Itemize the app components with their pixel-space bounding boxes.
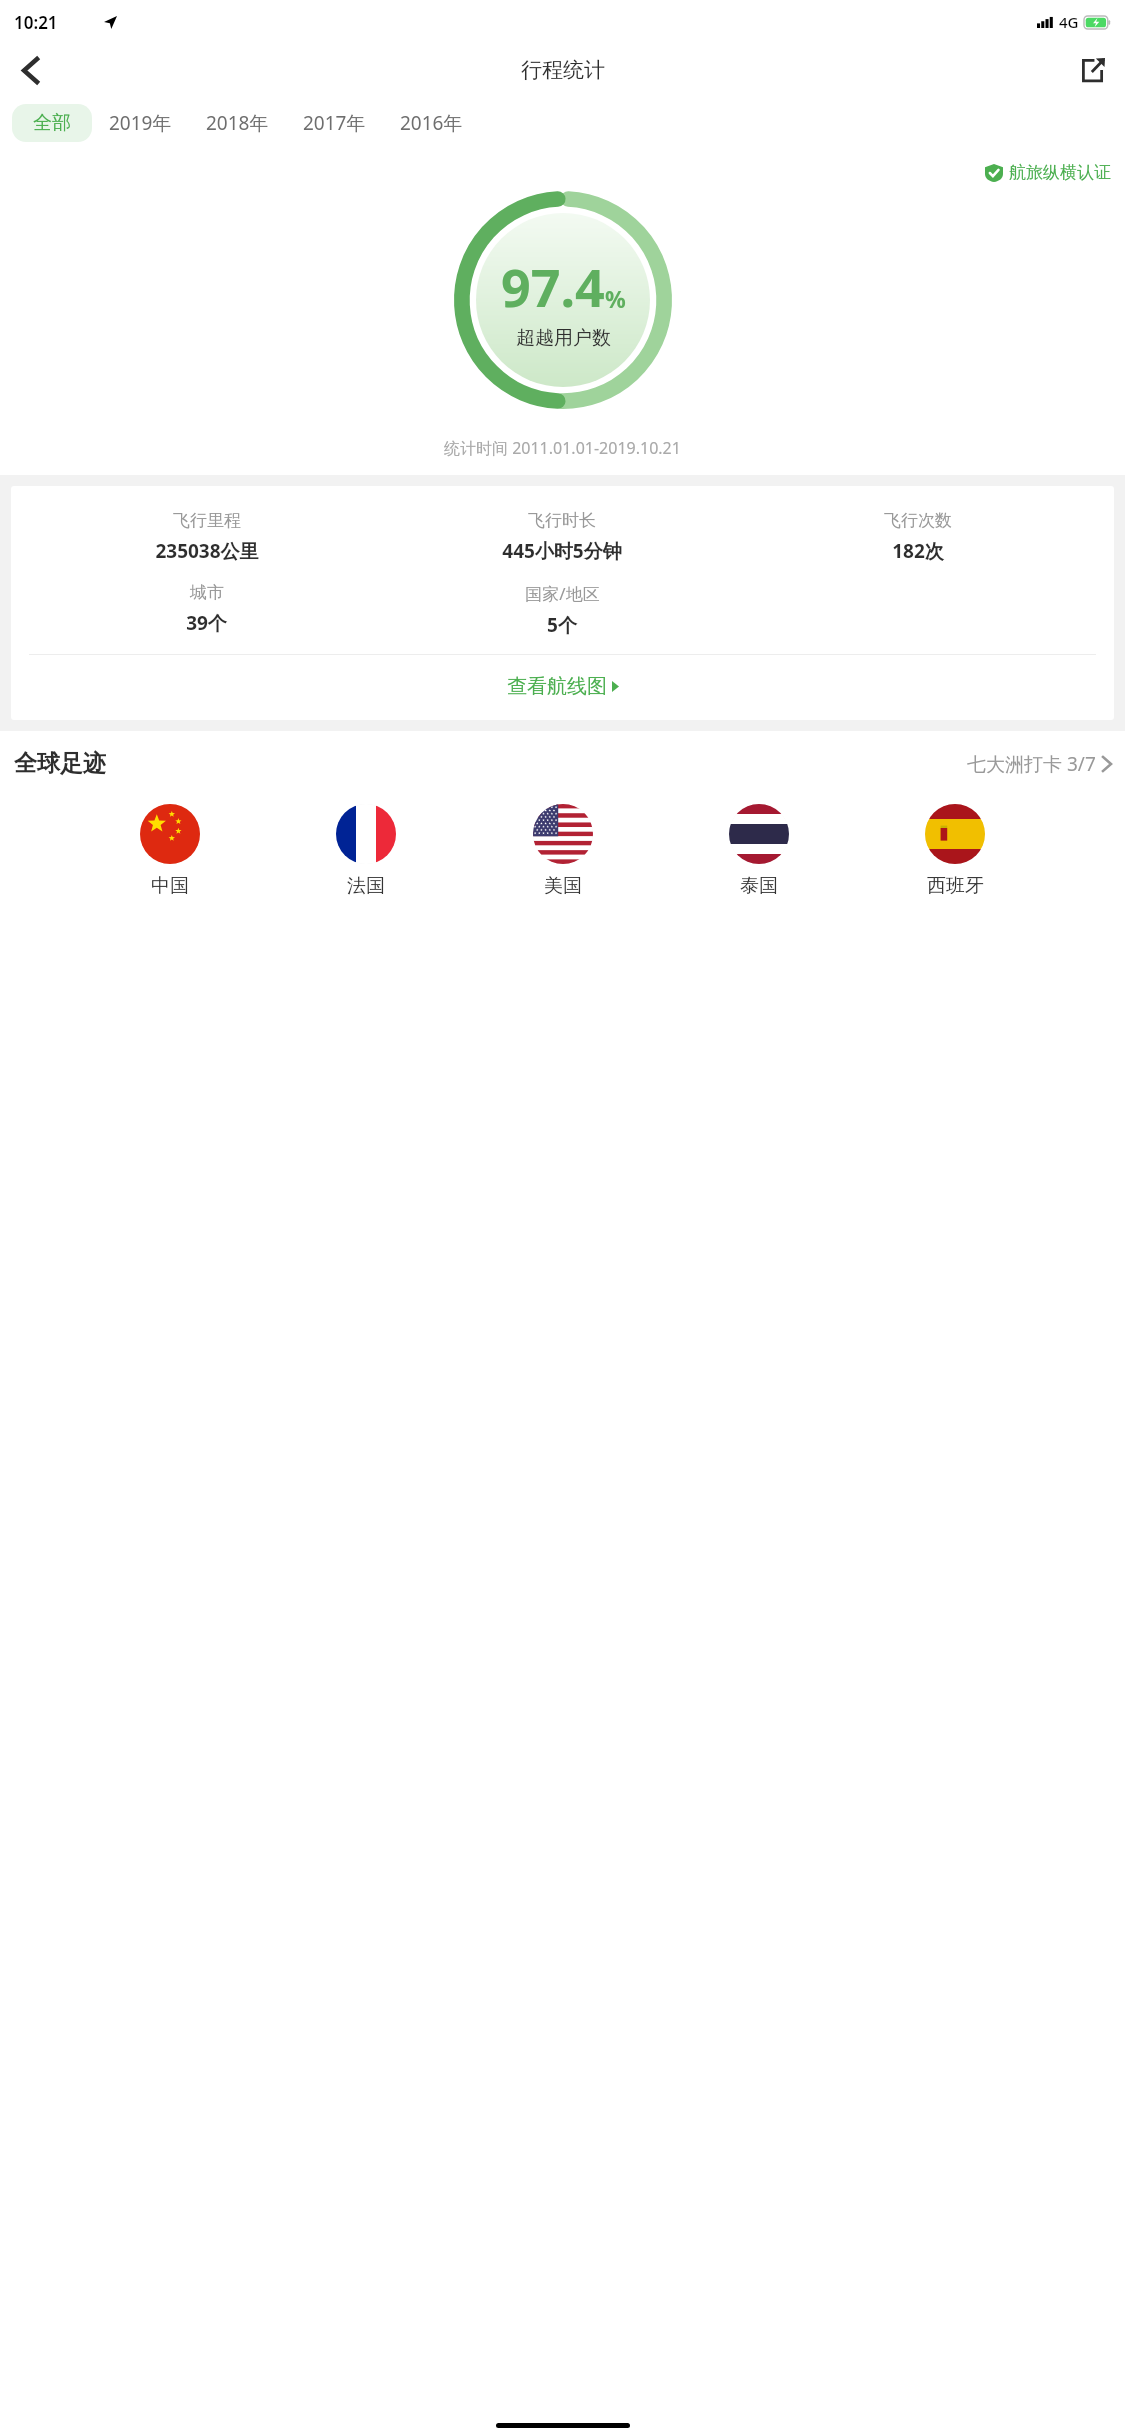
button[interactable]: Back	[6, 46, 54, 94]
staticText: 全球足迹	[14, 749, 106, 778]
button[interactable]: 法国	[332, 804, 400, 898]
staticText: 235038公里	[155, 538, 259, 564]
staticText: 查看航线图	[507, 674, 607, 699]
staticText: 航旅纵横认证	[1009, 162, 1111, 183]
button[interactable]: 七大洲打卡 3/7	[967, 751, 1111, 777]
button[interactable]: 2017年	[286, 103, 383, 143]
staticText: 2018年	[206, 110, 269, 136]
staticText: 182次	[892, 538, 944, 564]
staticText: 七大洲打卡 3/7	[967, 751, 1096, 777]
staticText: 2016年	[400, 110, 463, 136]
staticText: 飞行里程	[173, 510, 241, 531]
staticText: %	[605, 283, 626, 314]
staticText: 法国	[347, 874, 385, 898]
button[interactable]: 2016年	[383, 103, 480, 143]
staticText: 2019年	[109, 110, 172, 136]
staticText: 全部	[33, 111, 71, 135]
button[interactable]: 查看航线图	[29, 655, 1096, 718]
button[interactable]: 中国	[136, 804, 204, 898]
button[interactable]: 2019年	[92, 103, 189, 143]
staticText: 西班牙	[927, 874, 984, 898]
staticText: 行程统计	[521, 57, 605, 83]
staticText: 泰国	[740, 874, 778, 898]
staticText: 美国	[544, 874, 582, 898]
staticText: 97.4	[501, 251, 605, 322]
staticText: 国家/地区	[525, 582, 600, 605]
button[interactable]: 泰国	[725, 804, 793, 898]
button[interactable]: 航旅纵横认证	[985, 162, 1111, 183]
staticText: 39个	[186, 610, 227, 636]
staticText: 4G	[1059, 12, 1079, 32]
button[interactable]: 美国	[529, 804, 597, 898]
staticText: 超越用户数	[516, 326, 611, 350]
staticText: 10:21	[14, 11, 58, 34]
staticText: 中国	[151, 874, 189, 898]
staticText: 城市	[190, 582, 224, 603]
staticText: 飞行时长	[528, 510, 596, 531]
staticText: 2017年	[303, 110, 366, 136]
button[interactable]: 西班牙	[921, 804, 989, 898]
staticText: 445小时5分钟	[502, 538, 622, 564]
button[interactable]: 2018年	[189, 103, 286, 143]
staticText: 统计时间 2011.01.01-2019.10.21	[444, 437, 681, 459]
button[interactable]: 全部	[12, 104, 92, 142]
staticText: 5个	[547, 612, 577, 638]
button[interactable]: Share	[1069, 46, 1117, 94]
staticText: 飞行次数	[884, 510, 952, 531]
